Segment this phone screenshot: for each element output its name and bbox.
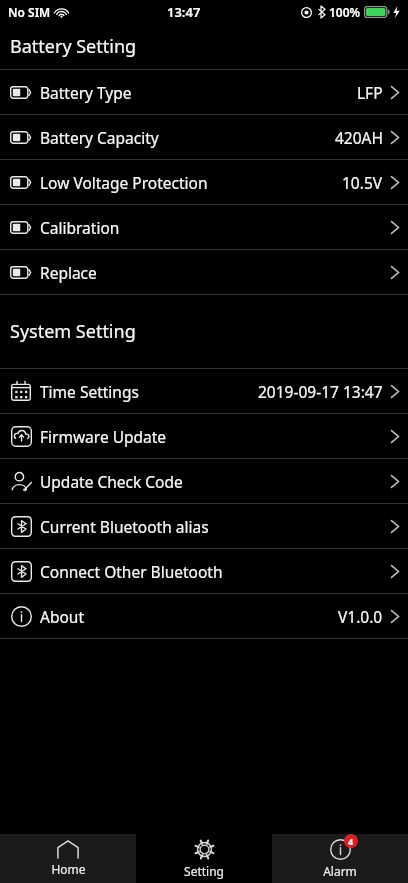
button[interactable]: Battery Capacity bbox=[0, 115, 408, 159]
button[interactable]: Home bbox=[0, 834, 136, 883]
staticText: About bbox=[40, 606, 84, 627]
staticText: 4 bbox=[348, 835, 354, 847]
staticText: LFP bbox=[357, 82, 383, 103]
button[interactable]: Calibration bbox=[0, 205, 408, 249]
staticText: V1.0.0 bbox=[338, 606, 383, 627]
staticText: Replace bbox=[40, 262, 97, 283]
staticText: 10.5V bbox=[342, 172, 383, 193]
button[interactable]: Low Voltage Protection bbox=[0, 160, 408, 204]
button[interactable]: Battery Type bbox=[0, 70, 408, 114]
staticText: Setting bbox=[184, 863, 224, 879]
button[interactable]: Firmware Update bbox=[0, 414, 408, 458]
button[interactable]: Update Check Code bbox=[0, 459, 408, 503]
staticText: Low Voltage Protection bbox=[40, 172, 208, 193]
staticText: Battery Capacity bbox=[40, 127, 159, 148]
staticText: No SIM bbox=[8, 4, 51, 20]
staticText: Firmware Update bbox=[40, 426, 167, 447]
staticText: 420AH bbox=[335, 127, 383, 148]
button[interactable]: Time Settings bbox=[0, 369, 408, 413]
button[interactable]: Current Bluetooth alias bbox=[0, 504, 408, 548]
button[interactable]: Connect Other Bluetooth bbox=[0, 549, 408, 593]
button[interactable]: Setting bbox=[136, 834, 272, 883]
button[interactable]: About bbox=[0, 594, 408, 638]
staticText: Alarm bbox=[323, 863, 357, 879]
staticText: Home bbox=[51, 861, 86, 877]
staticText: 2019-09-17 13:47 bbox=[258, 381, 383, 402]
staticText: Calibration bbox=[40, 217, 120, 238]
button[interactable]: Replace bbox=[0, 250, 408, 294]
staticText: 13:47 bbox=[167, 3, 201, 21]
staticText: Battery Type bbox=[40, 82, 132, 103]
staticText: Current Bluetooth alias bbox=[40, 516, 209, 537]
staticText: Update Check Code bbox=[40, 471, 183, 492]
button[interactable]: Alarm bbox=[272, 834, 408, 883]
staticText: Connect Other Bluetooth bbox=[40, 561, 223, 582]
staticText: Time Settings bbox=[40, 381, 139, 402]
staticText: System Setting bbox=[10, 319, 136, 344]
staticText: Battery Setting bbox=[10, 34, 137, 59]
staticText: 100% bbox=[329, 4, 361, 20]
